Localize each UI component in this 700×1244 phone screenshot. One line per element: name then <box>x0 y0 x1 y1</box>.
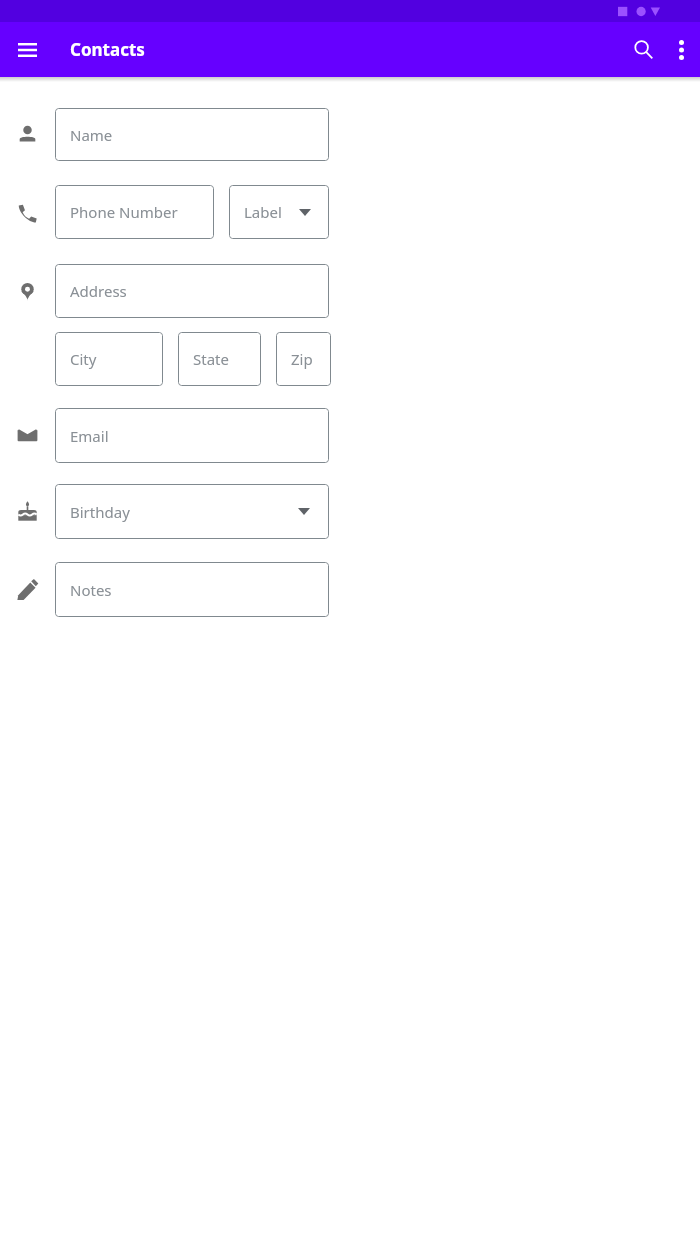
button[interactable]: Address field <box>55 264 329 318</box>
button[interactable]: Birthday selector <box>55 484 329 539</box>
button[interactable]: Zip field <box>276 332 331 386</box>
button[interactable]: Search <box>624 30 663 69</box>
staticText: Notes <box>70 580 112 600</box>
button[interactable]: Email field <box>55 408 329 463</box>
staticText: Label <box>244 202 282 222</box>
staticText: Phone Number <box>70 202 178 222</box>
button[interactable]: More options <box>663 31 700 68</box>
staticText: Birthday <box>70 502 130 522</box>
staticText: Zip <box>291 349 313 369</box>
button[interactable]: Label selector <box>229 185 329 239</box>
button[interactable]: State field <box>178 332 261 386</box>
staticText: City <box>70 349 97 369</box>
staticText: Address <box>70 281 127 301</box>
button[interactable]: Open navigation menu <box>9 31 46 68</box>
staticText: State <box>193 349 229 369</box>
staticText: Email <box>70 426 109 446</box>
button[interactable]: Notes field <box>55 562 329 617</box>
staticText: Name <box>70 125 113 145</box>
button[interactable]: City field <box>55 332 163 386</box>
staticText: Contacts <box>70 38 145 61</box>
button[interactable]: Name field <box>55 108 329 161</box>
button[interactable]: Phone number field <box>55 185 214 239</box>
